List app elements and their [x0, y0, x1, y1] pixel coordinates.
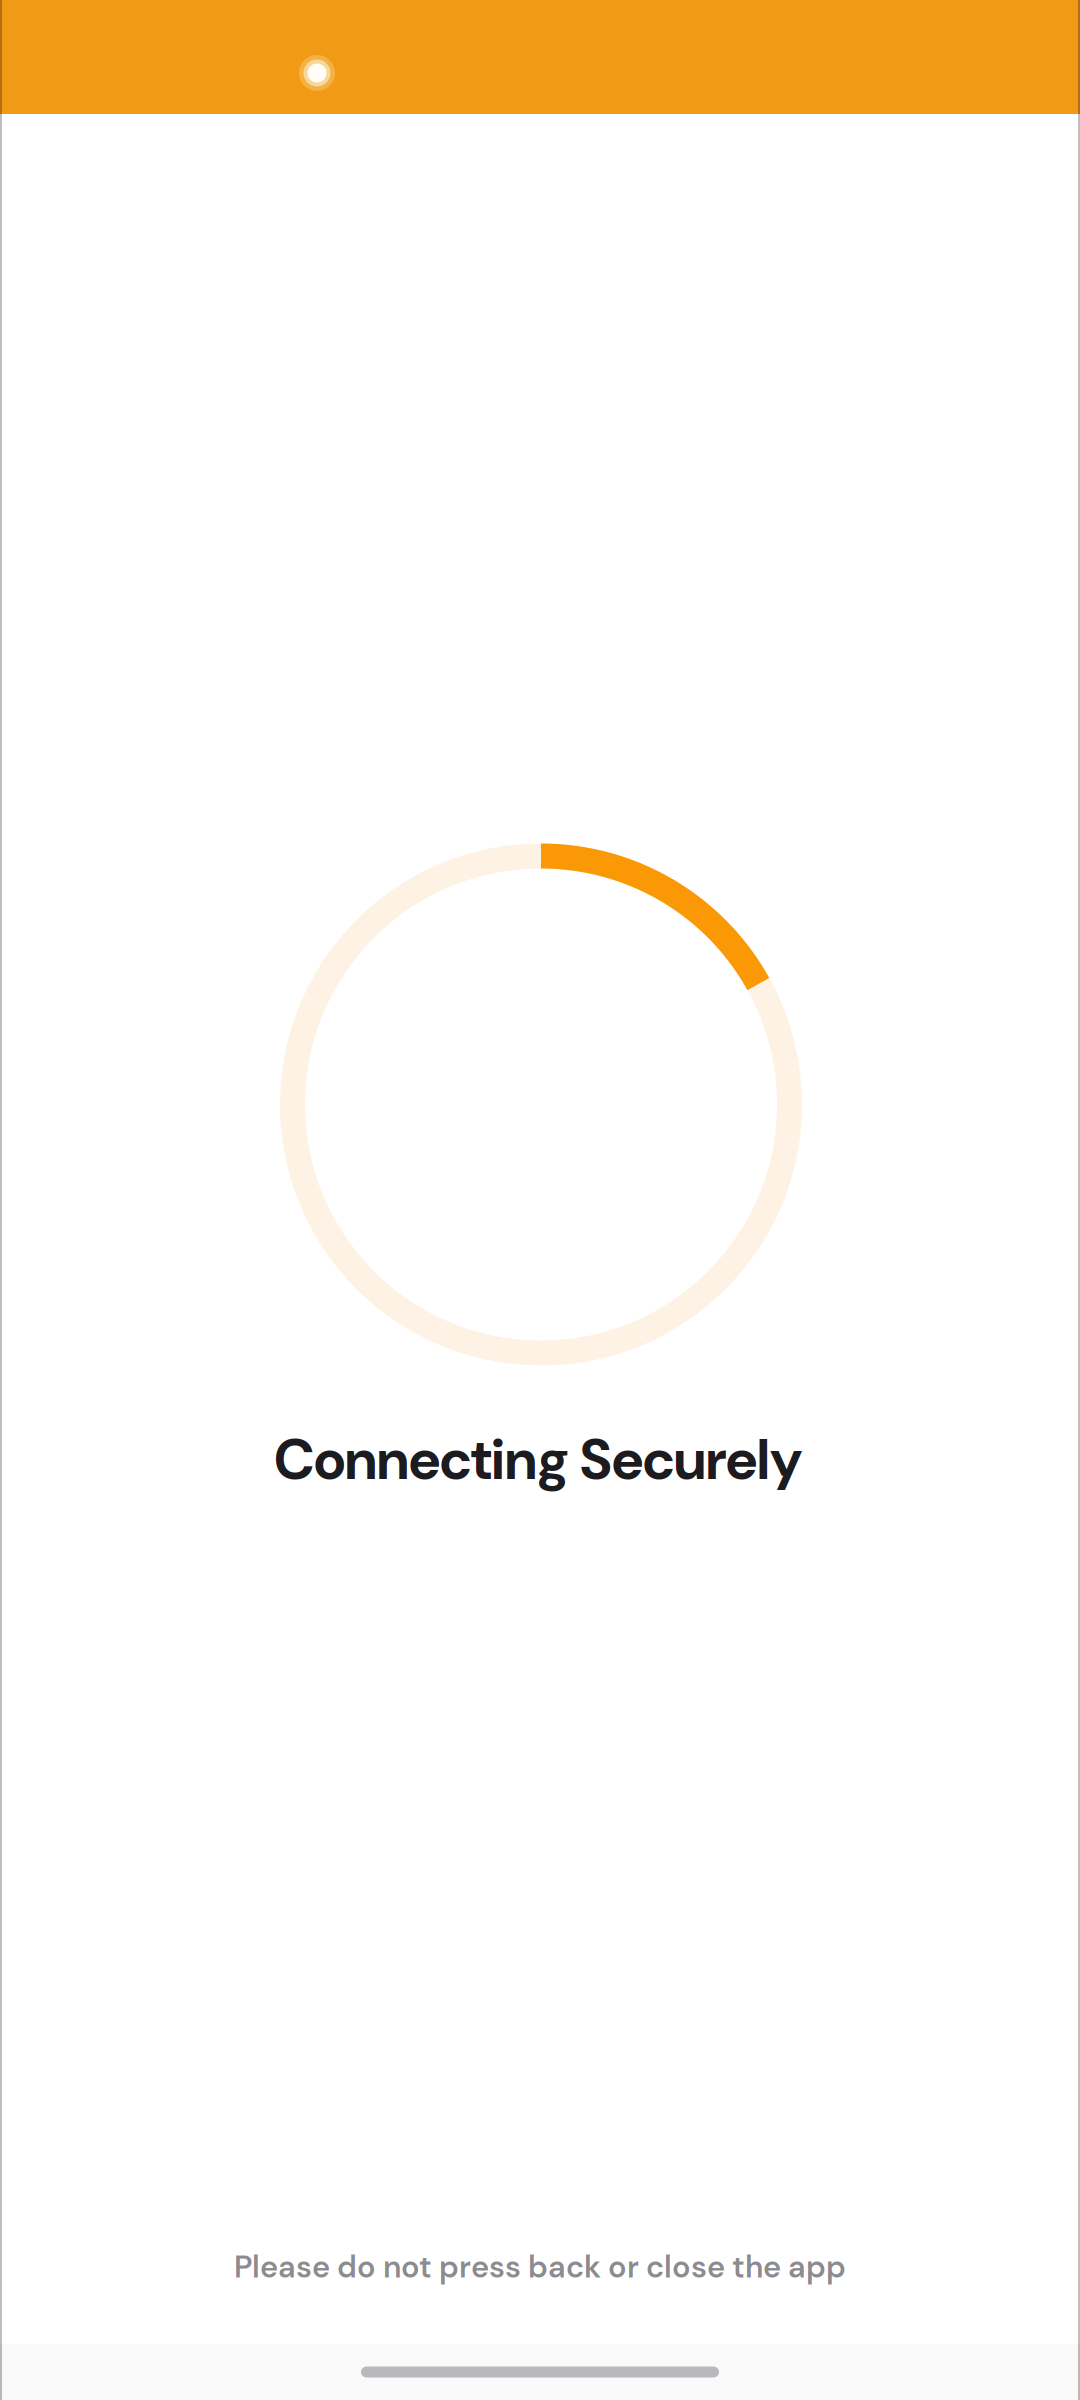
staticText: Connecting Securely	[274, 1423, 802, 1496]
staticText: Please do not press back or close the ap…	[234, 2247, 846, 2287]
button[interactable]: Home	[0, 2344, 1080, 2400]
